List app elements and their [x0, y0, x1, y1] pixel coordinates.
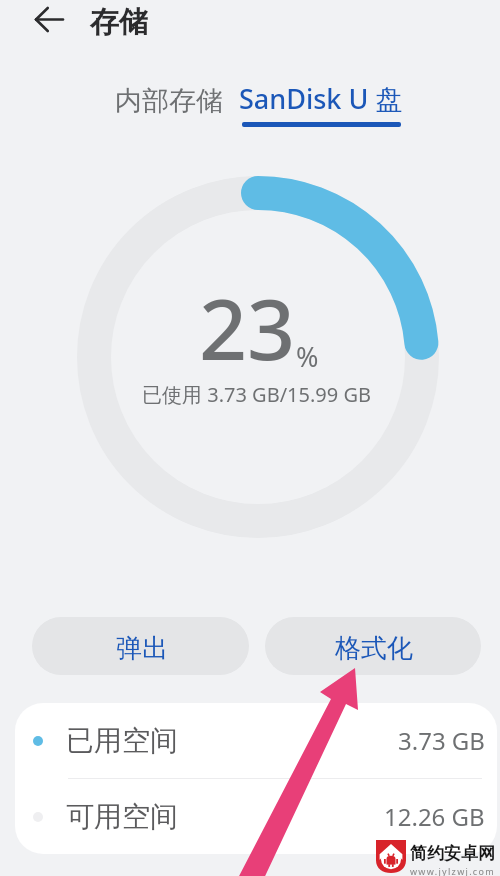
- staticText: 23: [199, 270, 296, 384]
- staticText: 内部存储: [115, 84, 223, 118]
- staticText: 已使用 3.73 GB/15.99 GB: [142, 381, 371, 408]
- button[interactable]: SanDisk U 盘: [234, 76, 408, 127]
- staticText: 12.26 GB: [384, 800, 485, 833]
- staticText: %: [296, 338, 319, 375]
- staticText: 弹出: [116, 632, 168, 665]
- button[interactable]: 内部存储: [108, 80, 230, 122]
- button[interactable]: 已用空间: [15, 703, 497, 778]
- staticText: 3.73 GB: [398, 724, 485, 757]
- staticText: 格式化: [335, 632, 413, 665]
- button[interactable]: 可用空间: [15, 779, 497, 854]
- staticText: 已用空间: [66, 723, 178, 758]
- button[interactable]: 弹出: [32, 617, 249, 675]
- button[interactable]: 格式化: [265, 617, 481, 675]
- staticText: 可用空间: [66, 799, 178, 834]
- button[interactable]: Back: [26, 0, 72, 38]
- staticText: SanDisk U 盘: [239, 80, 403, 117]
- staticText: 简约安卓网: [410, 843, 495, 864]
- staticText: www.jylzwj.com: [410, 865, 495, 876]
- staticText: 存储: [90, 4, 148, 41]
